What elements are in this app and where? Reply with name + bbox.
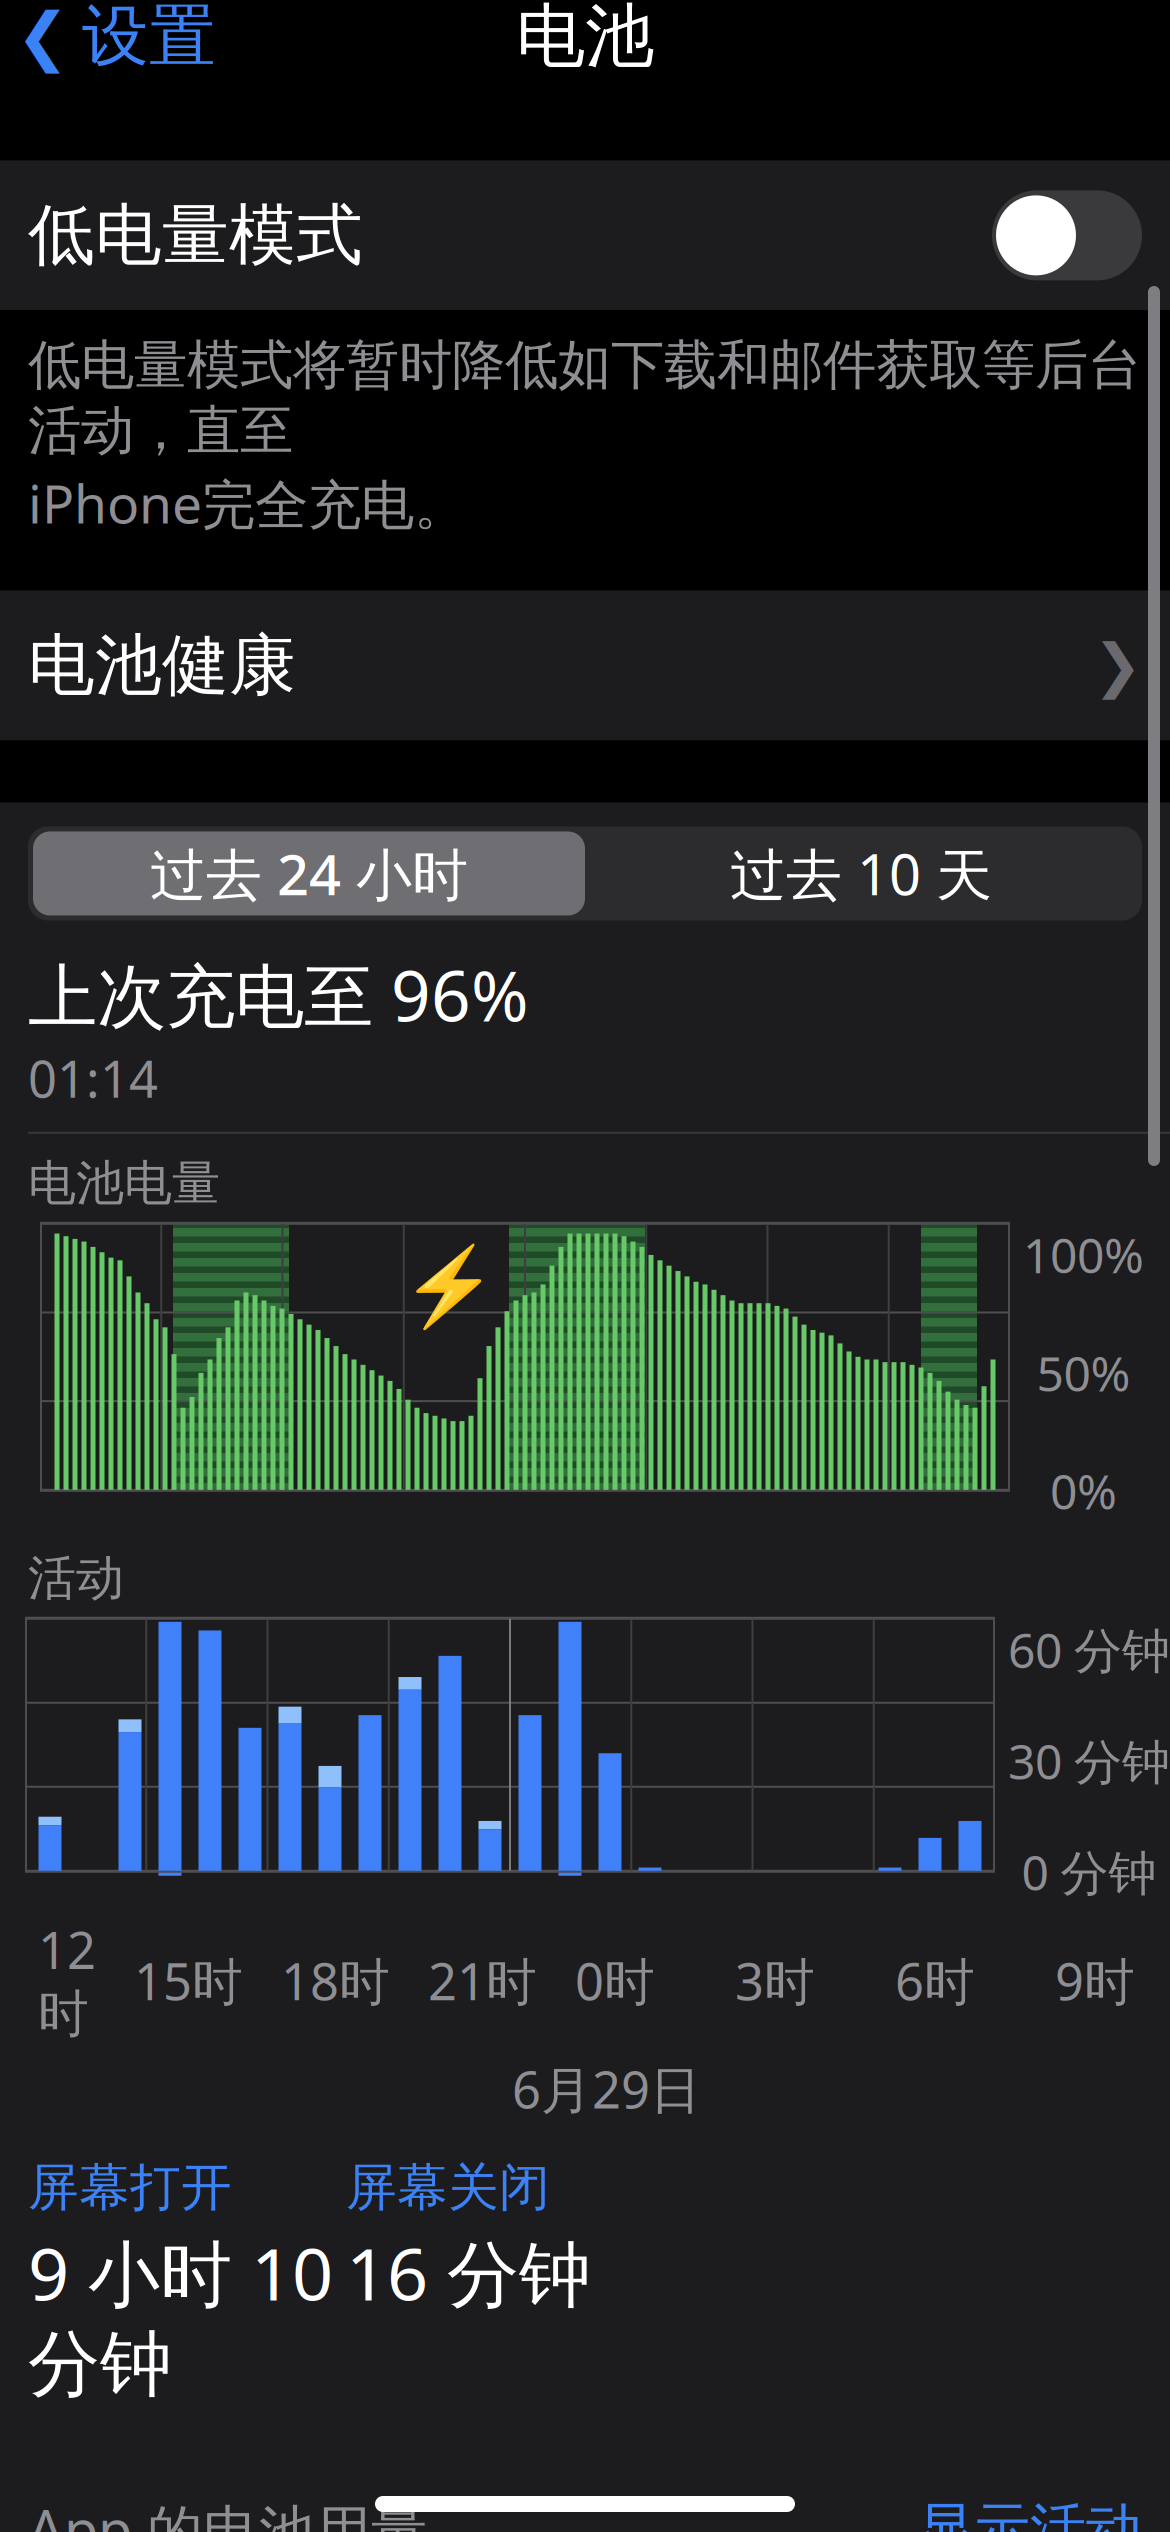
staticText: 0% (1050, 1459, 1117, 1523)
staticText: 3时 (735, 1947, 815, 2014)
button[interactable]: 显示活动 (888, 2485, 1142, 2532)
staticText: 过去 24 小时 (150, 836, 468, 911)
staticText: 低电量模式 (28, 194, 363, 276)
button[interactable]: 低电量模式 (0, 160, 1170, 310)
staticText: 15时 (134, 1947, 243, 2014)
staticText: 9 小时 10 分钟 (28, 2225, 333, 2409)
staticText: 21时 (428, 1947, 537, 2014)
staticText: 18时 (281, 1947, 390, 2014)
staticText: 设置 (82, 0, 216, 77)
staticText: 上次充电至 96% (28, 948, 529, 1041)
staticText: 0时 (575, 1947, 655, 2014)
staticText: 50% (1036, 1341, 1130, 1405)
staticText: 100% (1023, 1223, 1144, 1286)
staticText: 低电量模式将暂时降低如下载和邮件获取等后台活动，直至 (28, 332, 1141, 463)
staticText: 电池健康 (28, 624, 296, 706)
staticText: ❮ (16, 0, 70, 73)
staticText: 6时 (895, 1947, 975, 2014)
staticText: 活动 (28, 1549, 124, 1608)
staticText: 01:14 (28, 1045, 158, 1112)
staticText: 16 分钟 (346, 2225, 591, 2320)
staticText: 30 分钟 (1008, 1729, 1170, 1793)
staticText: 电池电量 (28, 1154, 220, 1213)
staticText: App 的电池用量 (28, 2492, 427, 2532)
staticText: ❯ (1093, 632, 1142, 699)
button[interactable]: 过去 10 天 (585, 831, 1137, 915)
staticText: 屏幕关闭 (346, 2157, 550, 2219)
staticText: 显示活动 (918, 2495, 1142, 2532)
staticText: 电池 (516, 0, 654, 79)
staticText: 60 分钟 (1008, 1618, 1170, 1681)
staticText: 12时 (38, 1916, 96, 2045)
button[interactable]: 电池健康 (0, 590, 1170, 740)
staticText: 过去 10 天 (730, 836, 992, 911)
staticText: iPhone完全充电。 (28, 467, 467, 538)
staticText: 9时 (1055, 1947, 1135, 2014)
staticText: ⚡ (401, 1243, 497, 1331)
button[interactable]: 过去 24 小时 (33, 831, 585, 915)
staticText: 6月29日 (512, 2055, 701, 2123)
staticText: 0 分钟 (1021, 1840, 1156, 1904)
staticText: 屏幕打开 (28, 2157, 232, 2219)
button[interactable]: ❮ (0, 0, 216, 93)
